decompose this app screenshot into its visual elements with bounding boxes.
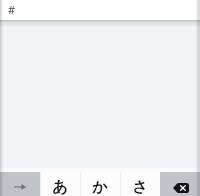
button[interactable]: あ	[40, 172, 80, 196]
staticText: か	[92, 178, 108, 196]
staticText: #	[8, 2, 16, 17]
staticText: さ	[132, 178, 148, 196]
button[interactable]: Backspace	[160, 172, 200, 196]
button[interactable]: Move cursor right	[0, 172, 40, 196]
staticText: あ	[52, 178, 68, 196]
button[interactable]: か	[80, 172, 120, 196]
button[interactable]: #	[0, 0, 200, 20]
button[interactable]: さ	[120, 172, 160, 196]
